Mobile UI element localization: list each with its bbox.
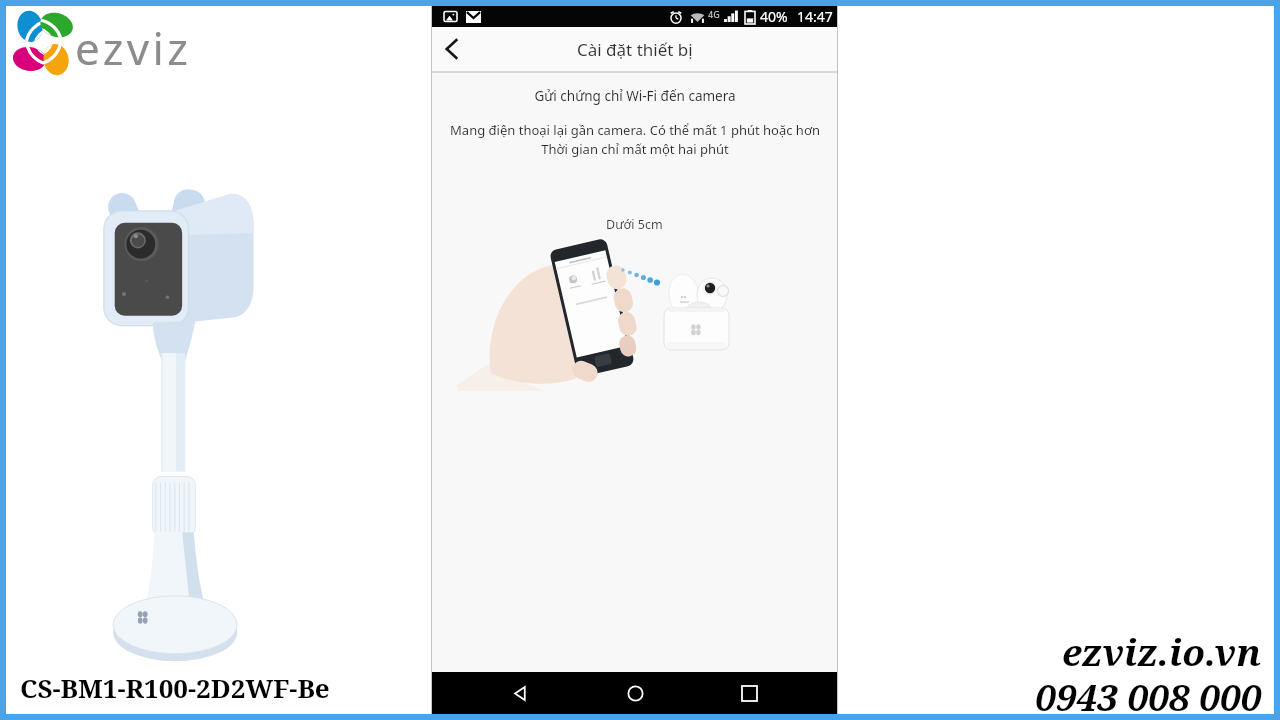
staticText: Cài đặt thiết bị (577, 38, 693, 61)
staticText: 40% (760, 7, 788, 26)
staticText: Dưới 5cm (606, 216, 663, 233)
staticText: 14:47 (797, 7, 833, 26)
staticText: CS-BM1-R100-2D2WF-Be (20, 670, 330, 705)
button[interactable]: Back (431, 28, 473, 70)
button[interactable]: Home (609, 672, 661, 714)
staticText: 0943 008 000 (1035, 671, 1262, 720)
staticText: 4G (708, 8, 720, 20)
button[interactable]: Back (494, 672, 546, 714)
staticText: Mang điện thoại lại gần camera. Có thể m… (450, 121, 820, 158)
staticText: ezviz (75, 18, 192, 78)
staticText: Gửi chứng chỉ Wi-Fi đến camera (534, 87, 736, 105)
staticText: ezviz.io.vn (1062, 626, 1262, 676)
button[interactable]: Recents (723, 672, 775, 714)
